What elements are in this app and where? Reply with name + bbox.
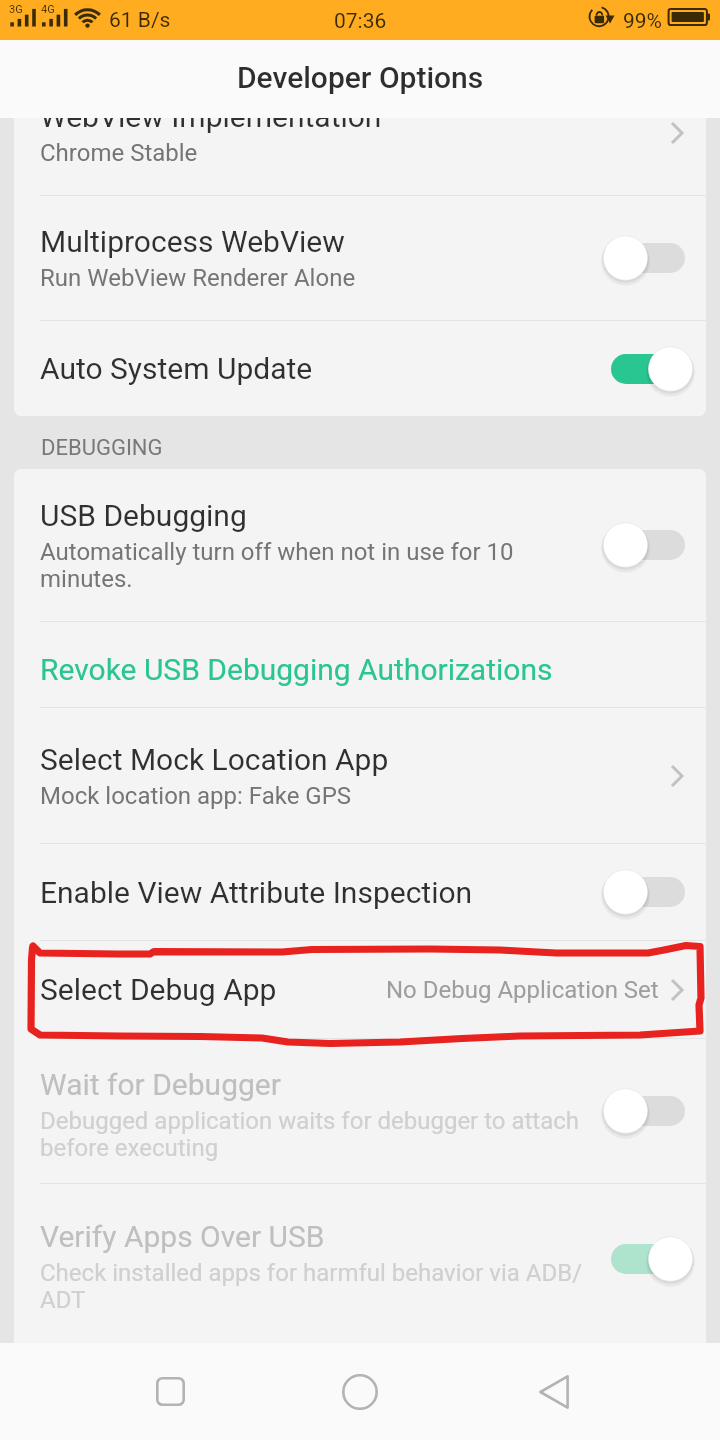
button[interactable]: Wait for Debugger bbox=[14, 1039, 706, 1183]
button[interactable]: Back bbox=[494, 1343, 614, 1440]
staticText: Select Debug App bbox=[40, 972, 277, 1007]
staticText: Enable View Attribute Inspection bbox=[40, 875, 473, 910]
staticText: 07:36 bbox=[334, 9, 387, 34]
staticText: Check installed apps for harmful behavio… bbox=[40, 1259, 592, 1314]
button[interactable]: WebView Implementation bbox=[14, 118, 706, 195]
staticText: Automatically turn off when not in use f… bbox=[40, 538, 592, 593]
button[interactable]: Home bbox=[300, 1343, 420, 1440]
staticText: Debugged application waits for debugger … bbox=[40, 1107, 592, 1162]
staticText: Revoke USB Debugging Authorizations bbox=[40, 652, 553, 687]
staticText: WebView Implementation bbox=[40, 118, 382, 134]
button[interactable]: Toggle off bbox=[600, 223, 706, 293]
button[interactable]: Revoke USB Debugging Authorizations bbox=[14, 622, 706, 707]
staticText: DEBUGGING bbox=[41, 435, 163, 461]
button[interactable]: Recent apps bbox=[110, 1343, 230, 1440]
staticText: USB Debugging bbox=[40, 498, 247, 533]
staticText: Select Mock Location App bbox=[40, 742, 389, 777]
button[interactable]: Auto System Update bbox=[14, 321, 706, 416]
staticText: 99% bbox=[623, 9, 662, 34]
staticText: No Debug Application Set bbox=[386, 976, 659, 1004]
button[interactable]: Toggle off bbox=[600, 857, 706, 927]
staticText: Multiprocess WebView bbox=[40, 224, 345, 259]
staticText: Run WebView Renderer Alone bbox=[40, 264, 356, 292]
button[interactable]: Verify Apps Over USB bbox=[14, 1184, 706, 1334]
button[interactable]: Toggle off bbox=[600, 1076, 706, 1146]
staticText: 4G bbox=[41, 3, 55, 16]
staticText: Developer Options bbox=[237, 60, 484, 95]
button[interactable]: Multiprocess WebView bbox=[14, 196, 706, 320]
button[interactable]: USB Debugging bbox=[14, 469, 706, 621]
staticText: Wait for Debugger bbox=[40, 1067, 281, 1102]
staticText: Mock location app: Fake GPS bbox=[40, 782, 352, 810]
button[interactable]: Toggle off bbox=[600, 510, 706, 580]
staticText: Chrome Stable bbox=[40, 139, 198, 167]
button[interactable]: Toggle on bbox=[600, 1224, 706, 1294]
staticText: 61 B/s bbox=[109, 8, 171, 33]
staticText: Auto System Update bbox=[40, 351, 313, 386]
staticText: Verify Apps Over USB bbox=[40, 1219, 325, 1254]
button[interactable]: Select Debug App bbox=[14, 941, 706, 1038]
button[interactable]: Enable View Attribute Inspection bbox=[14, 844, 706, 940]
button[interactable]: Select Mock Location App bbox=[14, 708, 706, 843]
button[interactable]: Toggle on bbox=[600, 334, 706, 404]
staticText: 3G bbox=[9, 3, 23, 16]
